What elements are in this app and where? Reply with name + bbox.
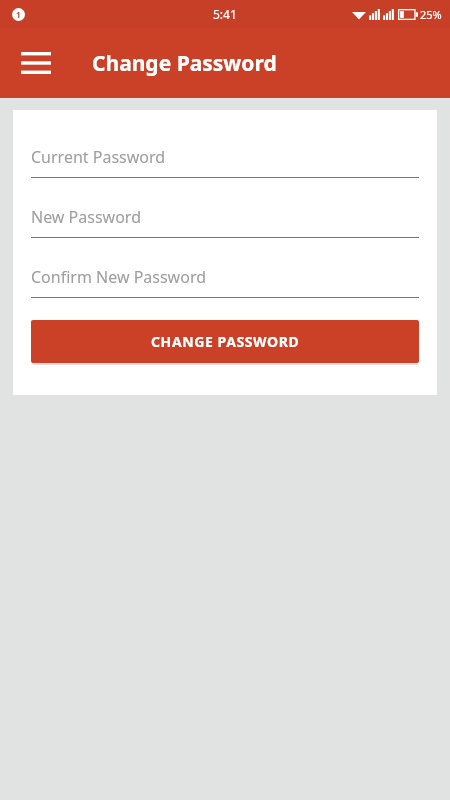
staticText: Confirm New Password — [31, 266, 207, 288]
staticText: New Password — [31, 206, 141, 228]
staticText: 1 — [16, 9, 21, 20]
staticText: Change Password — [92, 49, 277, 78]
button[interactable]: Confirm New Password — [31, 264, 419, 298]
button[interactable]: Current Password — [31, 144, 419, 178]
staticText: 5:41 — [213, 6, 237, 22]
button[interactable]: Open navigation menu — [14, 41, 58, 85]
button[interactable]: CHANGE PASSWORD — [31, 320, 419, 363]
staticText: Current Password — [31, 146, 166, 168]
staticText: 25% — [420, 7, 442, 22]
button[interactable]: New Password — [31, 204, 419, 238]
staticText: CHANGE PASSWORD — [151, 332, 300, 351]
